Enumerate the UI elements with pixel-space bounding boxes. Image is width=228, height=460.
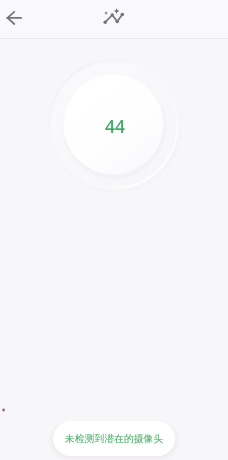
staticText: 未检测到潜在的摄像头 (65, 433, 163, 445)
button[interactable]: Back (0, 1, 34, 35)
staticText: 44 (105, 114, 126, 138)
button[interactable]: Statistics (97, 2, 131, 36)
button[interactable]: 未检测到潜在的摄像头 (53, 421, 175, 456)
